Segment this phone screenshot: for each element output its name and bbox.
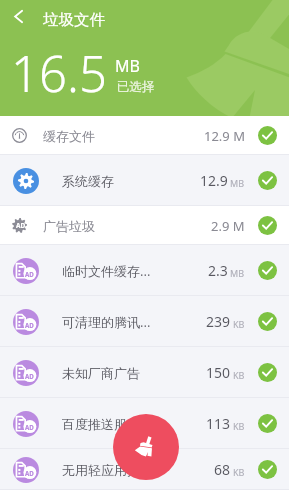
staticText: 百度推送服... xyxy=(62,415,202,433)
staticText: 150 xyxy=(206,363,231,382)
button[interactable]: Selected xyxy=(258,363,277,382)
staticText: 无用轻应用介... xyxy=(62,461,202,479)
staticText: 12.9 M xyxy=(204,127,245,145)
staticText: 113 xyxy=(206,414,231,433)
button[interactable]: 缓存文件 xyxy=(0,116,289,155)
staticText: 可清理的腾讯... xyxy=(62,313,202,331)
button[interactable]: AD xyxy=(0,296,289,347)
staticText: 缓存文件 xyxy=(43,128,183,144)
button[interactable]: Selected xyxy=(258,171,277,190)
button[interactable]: Selected xyxy=(258,216,277,235)
staticText: MB xyxy=(230,267,245,279)
staticText: MB xyxy=(115,55,140,77)
staticText: KB xyxy=(233,318,245,330)
button[interactable]: Selected xyxy=(258,414,277,433)
staticText: AD xyxy=(25,270,34,278)
staticText: AD xyxy=(25,469,34,477)
staticText: AD xyxy=(25,321,34,329)
button[interactable]: AD xyxy=(0,449,289,490)
button[interactable]: Selected xyxy=(258,460,277,479)
button[interactable]: AD xyxy=(0,245,289,296)
button[interactable]: 系统缓存 xyxy=(0,155,289,206)
staticText: 2.3 xyxy=(208,261,228,280)
staticText: KB xyxy=(233,369,245,381)
staticText: 68 xyxy=(214,460,231,479)
staticText: 广告垃圾 xyxy=(43,218,183,234)
staticText: AD xyxy=(25,372,34,380)
staticText: 16.5 xyxy=(11,40,107,107)
button[interactable]: Back xyxy=(6,4,30,28)
button[interactable]: AD xyxy=(0,347,289,398)
staticText: 239 xyxy=(206,312,231,331)
staticText: AD xyxy=(16,221,26,230)
staticText: KB xyxy=(233,466,245,478)
staticText: 2.9 M xyxy=(211,217,245,235)
staticText: MB xyxy=(230,177,245,189)
button[interactable]: Clean now xyxy=(113,414,179,480)
button[interactable]: Selected xyxy=(258,126,277,145)
staticText: KB xyxy=(233,420,245,432)
button[interactable]: Selected xyxy=(258,312,277,331)
staticText: AD xyxy=(25,423,34,431)
staticText: 垃圾文件 xyxy=(43,10,105,30)
staticText: 12.9 xyxy=(200,171,228,190)
staticText: 未知厂商广告 xyxy=(62,365,202,381)
button[interactable]: Selected xyxy=(258,261,277,280)
staticText: 临时文件缓存... xyxy=(62,262,202,280)
staticText: 已选择 xyxy=(117,79,155,95)
button[interactable]: AD xyxy=(0,398,289,449)
button[interactable]: AD xyxy=(0,206,289,245)
staticText: 系统缓存 xyxy=(62,173,202,189)
